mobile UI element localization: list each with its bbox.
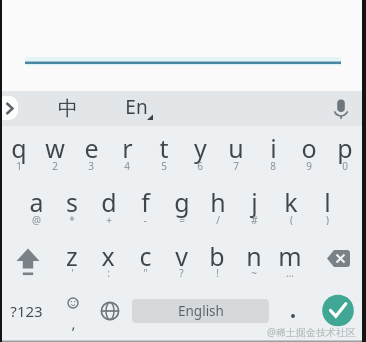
staticText: j [251,185,258,219]
staticText: m [278,239,302,273]
staticText: q [11,131,27,165]
staticText: / [216,213,220,225]
staticText: l [324,185,331,219]
staticText: 7 [233,159,239,171]
staticText: g [174,185,190,219]
staticText: c [139,239,152,273]
staticText: 中 [58,96,78,121]
staticText: i [270,131,277,165]
button[interactable]: x [90,238,126,274]
button[interactable]: v [163,238,199,274]
staticText: En [125,94,148,120]
staticText: t [159,131,169,165]
staticText: k [284,185,298,219]
button[interactable]: r [109,130,145,166]
button[interactable]: s [54,184,90,220]
staticText: 6 [197,159,203,171]
staticText: y [194,131,207,165]
button[interactable]: p [327,130,363,166]
staticText: x [101,239,115,273]
button[interactable]: t [146,130,182,166]
staticText: English [178,302,224,320]
staticText: ( [290,213,293,225]
staticText: ' [71,266,74,278]
staticText: " [143,266,148,278]
staticText: f [141,185,150,219]
staticText: … [286,266,294,278]
button[interactable] [0,96,18,120]
button[interactable]: , [63,313,83,331]
button[interactable] [275,291,311,331]
staticText: v [175,239,188,273]
button[interactable]: b [199,238,235,274]
button[interactable]: k [273,184,309,220]
button[interactable] [10,240,46,276]
staticText: u [228,131,244,165]
staticText: 4 [124,159,130,171]
button[interactable]: g [164,184,200,220]
button[interactable]: u [218,130,254,166]
staticText: o [301,131,317,165]
staticText: : [107,266,110,278]
button[interactable]: English [132,299,269,323]
button[interactable]: i [255,130,291,166]
staticText: z [66,239,78,273]
staticText: @ [32,213,41,225]
button[interactable]: o [291,130,327,166]
staticText: b [209,239,225,273]
staticText: p [337,131,353,165]
button[interactable]: n [236,238,272,274]
button[interactable]: f [127,184,163,220]
staticText: + [106,213,112,225]
button[interactable] [92,291,128,331]
staticText: 8 [270,159,276,171]
staticText: 2 [52,159,58,171]
button[interactable]: ?123 [3,291,49,331]
button[interactable]: h [200,184,236,220]
button[interactable]: w [37,130,73,166]
staticText: e [84,131,99,165]
button[interactable]: e [73,130,109,166]
button[interactable]: q [1,130,37,166]
button[interactable]: d [91,184,127,220]
staticText: ? [179,266,184,278]
staticText: a [29,185,44,219]
button[interactable]: En [118,93,154,121]
staticText: 5 [161,159,167,171]
staticText: ! [216,266,219,278]
staticText: ) [326,213,329,225]
staticText: d [101,185,117,219]
staticText: 3 [88,159,94,171]
staticText: ~ [251,266,257,278]
button[interactable] [55,291,91,331]
staticText: 1 [16,159,22,171]
staticText: = [179,213,185,225]
button[interactable]: c [127,238,163,274]
staticText: 0 [342,159,348,171]
button[interactable]: y [182,130,218,166]
staticText: w [45,131,65,165]
staticText: r [122,131,133,165]
button[interactable]: z [54,238,90,274]
staticText: n [246,239,262,273]
button[interactable]: l [309,184,345,220]
staticText: - [143,213,147,225]
staticText: ?123 [10,301,43,321]
staticText: , [71,313,76,331]
button[interactable]: j [236,184,272,220]
button[interactable] [325,95,357,123]
button[interactable] [321,240,357,276]
button[interactable]: a [18,184,54,220]
staticText: h [210,185,226,219]
staticText: 9 [306,159,312,171]
button[interactable] [322,295,354,327]
staticText: # [251,213,258,225]
button[interactable]: 中 [52,93,84,123]
button[interactable]: m [272,238,308,274]
staticText: * [69,213,75,225]
staticText: @稀土掘金技术社区 [267,325,356,339]
staticText: s [66,185,78,219]
